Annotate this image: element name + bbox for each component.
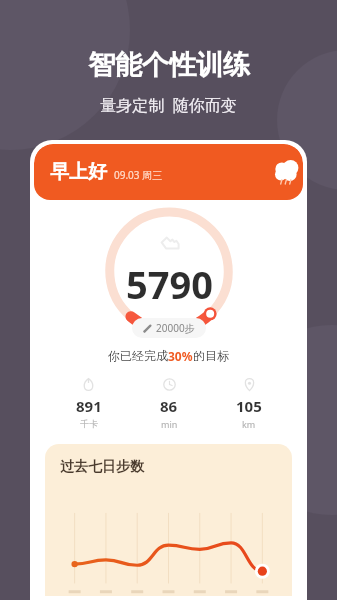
staticText: 5790 xyxy=(126,258,213,310)
staticText: 千卡 xyxy=(80,418,98,429)
staticText: 20000步 xyxy=(156,321,195,335)
staticText: 的目标 xyxy=(193,348,229,363)
button[interactable]: 早上好 xyxy=(34,144,303,200)
staticText: km xyxy=(242,418,256,430)
staticText: 智能个性训练 xyxy=(88,48,250,82)
button[interactable]: 20000步 xyxy=(132,318,206,338)
staticText: 过去七日步数 xyxy=(60,458,144,476)
button[interactable]: 105 xyxy=(209,378,289,430)
staticText: 09.03 周三 xyxy=(114,168,163,182)
button[interactable]: 86 xyxy=(129,378,209,430)
staticText: 量身定制 随你而变 xyxy=(100,94,237,116)
button[interactable]: Weather xyxy=(272,157,302,187)
staticText: 早上好 xyxy=(50,160,107,184)
staticText: 30% xyxy=(168,348,193,364)
staticText: 86 xyxy=(160,396,178,416)
button[interactable]: 891 xyxy=(48,378,129,429)
staticText: 891 xyxy=(76,396,102,416)
staticText: 105 xyxy=(236,396,262,416)
button[interactable]: 过去七日步数 xyxy=(45,444,292,596)
staticText: min xyxy=(161,418,178,430)
staticText: 你已经完成 xyxy=(108,348,168,363)
